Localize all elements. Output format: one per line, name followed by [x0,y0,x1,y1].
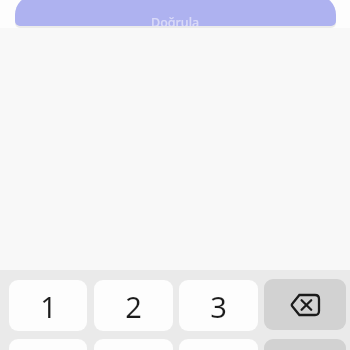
staticText: 1 [40,287,57,326]
staticText: 3 [210,287,227,326]
button[interactable]: 5 [94,339,173,350]
staticText: Doğrula [151,14,200,26]
staticText: 2 [125,287,142,326]
button[interactable]: Doğrula [15,0,336,26]
button[interactable]: 3 [179,280,258,331]
button[interactable]: 4 [9,339,87,350]
button[interactable] [264,339,346,350]
button[interactable] [264,279,346,330]
button[interactable]: 6 [179,339,258,350]
button[interactable]: 1 [9,280,87,331]
button[interactable]: 2 [94,280,173,331]
